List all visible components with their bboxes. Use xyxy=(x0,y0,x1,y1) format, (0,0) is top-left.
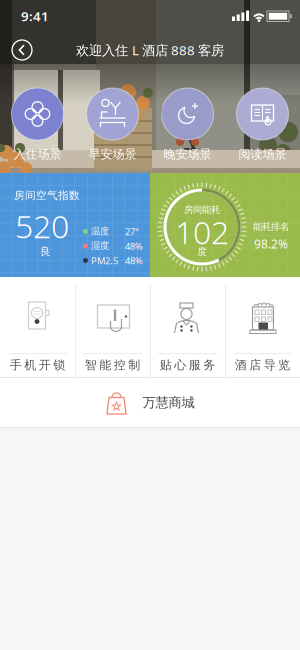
staticText: 早安场景 xyxy=(88,147,136,162)
staticText: 520 xyxy=(15,204,69,247)
button[interactable]: 阅读场景 xyxy=(225,88,300,162)
staticText: 48% xyxy=(125,240,143,252)
staticText: 良 xyxy=(40,245,51,258)
staticText: 智能控制 xyxy=(85,358,140,372)
button[interactable]: 手机开锁 xyxy=(0,277,75,377)
staticText: 48% xyxy=(125,254,143,267)
staticText: 万慧商城 xyxy=(142,394,194,411)
button[interactable]: 酒店导览 xyxy=(225,277,300,377)
staticText: 阅读场景 xyxy=(238,147,286,162)
staticText: 能耗排名 xyxy=(253,221,289,232)
staticText: 98.2% xyxy=(254,236,288,252)
staticText: 酒店导览 xyxy=(235,358,290,372)
staticText: 手机开锁 xyxy=(10,358,65,372)
button[interactable]: 万慧商城 xyxy=(0,377,300,428)
staticText: 贴心服务 xyxy=(160,358,215,372)
button[interactable]: 智能控制 xyxy=(75,277,150,377)
staticText: 房间能耗 xyxy=(184,204,220,215)
staticText: 9:41 xyxy=(21,7,49,25)
button[interactable]: 早安场景 xyxy=(75,88,150,162)
staticText: 欢迎入住 L 酒店 888 客房 xyxy=(76,41,224,59)
staticText: 入住场景 xyxy=(13,147,61,162)
staticText: 晚安场景 xyxy=(163,147,211,162)
staticText: PM2.5 xyxy=(91,254,118,267)
button[interactable]: 晚安场景 xyxy=(150,88,225,162)
staticText: 27° xyxy=(125,225,139,238)
staticText: 湿度 xyxy=(91,240,109,251)
staticText: 度 xyxy=(197,246,206,257)
staticText: 102 xyxy=(175,210,229,253)
staticText: 温度 xyxy=(91,225,109,237)
button[interactable]: 入住场景 xyxy=(0,88,75,162)
staticText: 房间空气指数 xyxy=(14,189,80,202)
button[interactable]: 贴心服务 xyxy=(150,277,225,377)
button[interactable]: Back xyxy=(11,39,33,61)
